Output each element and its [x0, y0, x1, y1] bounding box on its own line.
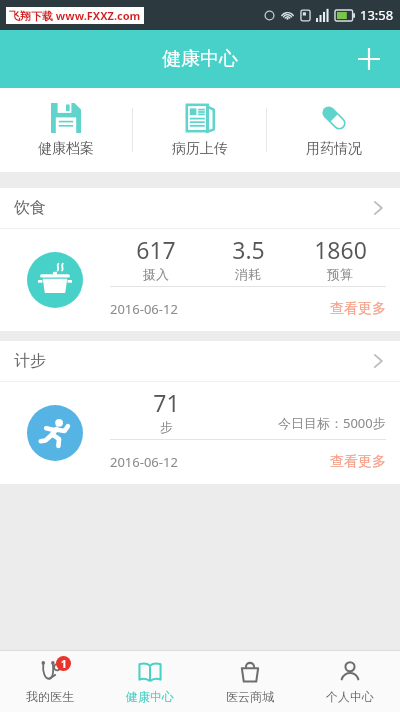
- button[interactable]: 查看更多: [330, 300, 386, 318]
- staticText: 用药情况: [306, 140, 362, 158]
- staticText: 2016-06-12: [110, 300, 178, 318]
- staticText: 1: [61, 657, 67, 671]
- button[interactable]: Add: [346, 36, 392, 82]
- button[interactable]: 健康档案: [0, 88, 132, 172]
- staticText: 飞翔下载 www.FXXZ.com: [9, 8, 141, 23]
- staticText: 消耗: [235, 266, 261, 282]
- staticText: 摄入: [143, 266, 169, 282]
- staticText: 医云商城: [226, 689, 274, 704]
- button[interactable]: 查看更多: [330, 453, 386, 471]
- staticText: 饮食: [14, 198, 46, 218]
- staticText: 2016-06-12: [110, 453, 178, 471]
- button[interactable]: 病历上传: [133, 88, 266, 172]
- staticText: 步: [160, 419, 173, 435]
- staticText: 预算: [327, 266, 353, 282]
- button[interactable]: 用药情况: [267, 88, 400, 172]
- staticText: 病历上传: [172, 140, 228, 158]
- staticText: 计步: [14, 351, 46, 371]
- button[interactable]: 饮食: [0, 188, 400, 228]
- staticText: 健康中心: [162, 47, 238, 71]
- staticText: 我的医生: [26, 689, 74, 704]
- staticText: 1860: [314, 234, 367, 265]
- staticText: 个人中心: [326, 689, 374, 704]
- button[interactable]: 计步: [0, 341, 400, 381]
- staticText: 617: [136, 234, 176, 265]
- staticText: 今日目标：5000步: [278, 414, 386, 432]
- staticText: 71: [153, 387, 180, 418]
- staticText: 查看更多: [330, 300, 386, 318]
- staticText: 查看更多: [330, 453, 386, 471]
- button[interactable]: 个人中心: [300, 651, 400, 712]
- staticText: 3.5: [232, 234, 265, 265]
- staticText: 13:58: [360, 6, 394, 24]
- staticText: 健康中心: [126, 689, 174, 704]
- staticText: 健康档案: [38, 140, 94, 158]
- button[interactable]: 1: [0, 651, 100, 712]
- button[interactable]: 医云商城: [200, 651, 300, 712]
- button[interactable]: 健康中心: [100, 651, 200, 712]
